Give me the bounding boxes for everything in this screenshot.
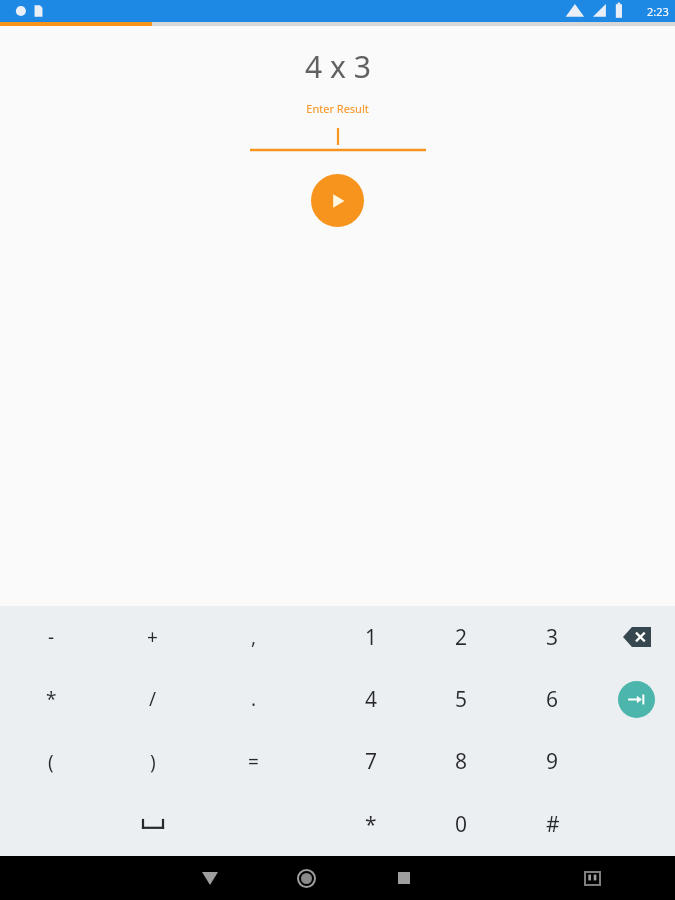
button[interactable]: * bbox=[326, 793, 416, 856]
staticText: ) bbox=[150, 749, 156, 775]
staticText: , bbox=[251, 624, 257, 650]
button[interactable]: 2 bbox=[416, 606, 507, 668]
button[interactable]: Play bbox=[311, 174, 364, 227]
button[interactable]: ( bbox=[0, 730, 102, 793]
button[interactable]: * bbox=[0, 668, 102, 730]
staticText: 2 bbox=[455, 623, 468, 652]
button[interactable]: 1 bbox=[326, 606, 416, 668]
staticText: = bbox=[248, 749, 259, 775]
button[interactable]: ) bbox=[102, 730, 203, 793]
staticText: 5 bbox=[455, 685, 468, 714]
staticText: * bbox=[46, 686, 57, 712]
button[interactable]: 0 bbox=[416, 793, 507, 856]
staticText: 7 bbox=[365, 747, 378, 776]
button[interactable]: 8 bbox=[416, 730, 507, 793]
button[interactable]: 9 bbox=[507, 730, 598, 793]
staticText: - bbox=[48, 624, 55, 650]
button[interactable]: # bbox=[507, 793, 598, 856]
staticText: Enter Result bbox=[306, 101, 369, 116]
button[interactable]: Enter bbox=[618, 681, 655, 718]
staticText: 2:23 bbox=[647, 4, 669, 19]
button[interactable]: - bbox=[0, 606, 102, 668]
button[interactable]: 7 bbox=[326, 730, 416, 793]
staticText: 3 bbox=[546, 623, 559, 652]
staticText: 1 bbox=[365, 623, 378, 652]
staticText: 4 x 3 bbox=[305, 46, 371, 87]
staticText: 8 bbox=[455, 747, 468, 776]
staticText: 9 bbox=[546, 747, 559, 776]
staticText: 6 bbox=[546, 685, 559, 714]
staticText: 0 bbox=[455, 810, 468, 839]
button[interactable]: , bbox=[203, 606, 304, 668]
staticText: * bbox=[365, 810, 377, 839]
button[interactable]: Switch keyboard bbox=[544, 856, 641, 900]
button[interactable]: Back bbox=[161, 856, 258, 900]
button[interactable]: 3 bbox=[507, 606, 598, 668]
staticText: ( bbox=[48, 749, 54, 775]
button[interactable]: Home bbox=[258, 856, 355, 900]
button[interactable] bbox=[250, 122, 426, 152]
button[interactable]: = bbox=[203, 730, 304, 793]
button[interactable]: . bbox=[203, 668, 304, 730]
staticText: . bbox=[251, 686, 257, 712]
staticText: + bbox=[147, 624, 158, 650]
button[interactable]: + bbox=[102, 606, 203, 668]
button[interactable]: Backspace bbox=[598, 606, 675, 668]
button[interactable]: 4 bbox=[326, 668, 416, 730]
button[interactable]: 5 bbox=[416, 668, 507, 730]
button[interactable]: 6 bbox=[507, 668, 598, 730]
staticText: # bbox=[546, 810, 560, 839]
button[interactable]: Recents bbox=[355, 856, 452, 900]
button[interactable]: / bbox=[102, 668, 203, 730]
staticText: 4 bbox=[365, 685, 378, 714]
staticText: / bbox=[149, 686, 157, 712]
button[interactable]: Space bbox=[102, 793, 203, 856]
